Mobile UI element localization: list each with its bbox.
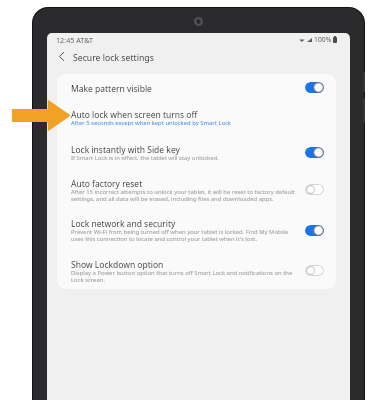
button[interactable]: Lock network and security bbox=[57, 212, 336, 242]
button[interactable]: Lock instantly with Side key bbox=[57, 138, 336, 161]
staticText: Secure lock settings bbox=[73, 52, 154, 64]
button[interactable]: Switch off bbox=[305, 265, 324, 276]
button[interactable]: Make pattern visible bbox=[57, 77, 336, 95]
staticText: Display a Power button option that turns… bbox=[71, 269, 293, 277]
button[interactable]: Show Lockdown option bbox=[57, 253, 336, 283]
button[interactable]: Auto lock when screen turns off bbox=[57, 103, 336, 126]
button[interactable]: Switch on bbox=[305, 147, 324, 158]
staticText: settings, and all data will be erased, i… bbox=[71, 195, 274, 203]
staticText: 12:45 AT&T bbox=[56, 35, 94, 45]
staticText: Lock network and security bbox=[71, 218, 176, 230]
staticText: If Smart Lock is in effect, the tablet w… bbox=[71, 154, 219, 162]
staticText: Show Lockdown option bbox=[71, 259, 164, 271]
staticText: Lock instantly with Side key bbox=[71, 144, 180, 156]
staticText: Auto factory reset bbox=[71, 178, 143, 190]
staticText: uses this connection to locate and contr… bbox=[71, 235, 257, 243]
staticText: Make pattern visible bbox=[71, 83, 152, 95]
staticText: Auto lock when screen turns off bbox=[71, 109, 198, 121]
staticText: 100% bbox=[314, 35, 332, 44]
staticText: After 5 seconds except when kept unlocke… bbox=[71, 119, 232, 127]
button[interactable]: Navigate up bbox=[51, 46, 72, 67]
button[interactable]: Switch on bbox=[305, 82, 324, 93]
staticText: Lock screen. bbox=[71, 276, 105, 284]
staticText: After 15 incorrect attempts to unlock yo… bbox=[71, 188, 295, 196]
button[interactable]: Switch on bbox=[305, 225, 324, 236]
button[interactable]: Auto factory reset bbox=[57, 172, 336, 202]
button[interactable]: Switch off bbox=[305, 184, 324, 195]
staticText: Prevent Wi-Fi from being turned off when… bbox=[71, 228, 288, 236]
